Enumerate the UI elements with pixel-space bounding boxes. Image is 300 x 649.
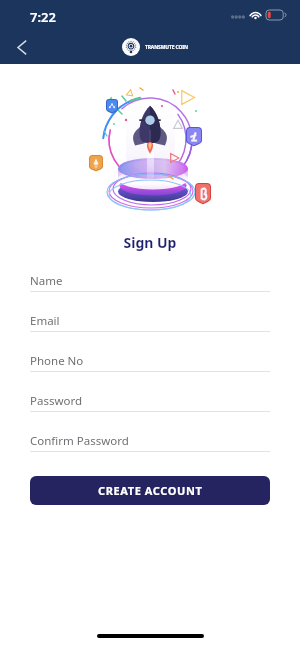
button[interactable]: Back — [6, 31, 38, 63]
staticText: Name — [30, 273, 63, 289]
staticText: CREATE ACCOUNT — [98, 483, 203, 498]
staticText: Sign Up — [0, 233, 300, 252]
button[interactable]: Password — [30, 372, 270, 412]
staticText: TRANSMUTE COIN — [145, 44, 188, 51]
button[interactable]: Confirm Password — [30, 412, 270, 452]
button[interactable]: Name — [30, 252, 270, 292]
button[interactable]: Phone No — [30, 332, 270, 372]
staticText: Confirm Password — [30, 433, 129, 449]
button[interactable]: CREATE ACCOUNT — [30, 476, 270, 505]
staticText: Email — [30, 313, 60, 329]
staticText: Password — [30, 393, 83, 409]
button[interactable]: Email — [30, 292, 270, 332]
staticText: 7:22 — [30, 8, 56, 26]
staticText: Phone No — [30, 353, 84, 369]
